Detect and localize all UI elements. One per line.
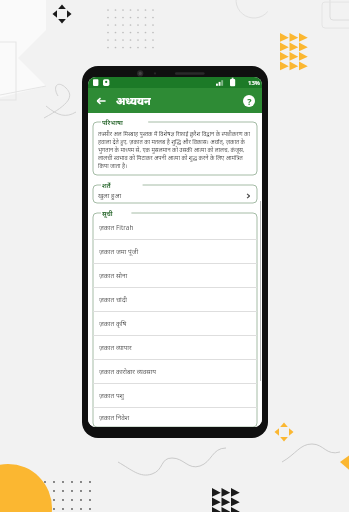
button[interactable]: ज़कात निवेश [93, 408, 257, 427]
staticText: ज़कात कारोबार व्यवसाय [99, 367, 157, 376]
staticText: परिभाषा [102, 118, 123, 126]
staticText: शर्तें [102, 181, 111, 189]
button[interactable]: ज़कात कारोबार व्यवसाय [93, 360, 257, 383]
staticText: तफ़्सीर अल मिस्बाह पुस्तक में विशेषज्ञ र… [98, 130, 252, 170]
button[interactable]: Back [91, 91, 111, 111]
button[interactable]: ज़कात चांदी [93, 288, 257, 311]
staticText: ज़कात सोना [99, 271, 128, 280]
staticText: ज़कात व्यापार [99, 343, 132, 352]
staticText: ज़कात जमा पूंजी [99, 247, 139, 256]
staticText: सूची [102, 209, 113, 217]
staticText: अध्ययन [116, 93, 151, 108]
staticText: ज़कात कृषि [99, 319, 127, 328]
button[interactable]: ज़कात Fitrah [93, 216, 257, 239]
button[interactable]: खुला हुआ [98, 191, 252, 200]
staticText: खुला हुआ [98, 191, 244, 200]
button[interactable]: ज़कात कृषि [93, 312, 257, 335]
button[interactable]: Help [239, 91, 259, 111]
staticText: 13% [248, 79, 260, 87]
staticText: ज़कात Fitrah [99, 223, 134, 232]
staticText: ज़कात निवेश [99, 413, 130, 422]
button[interactable]: ज़कात व्यापार [93, 336, 257, 359]
button[interactable]: ज़कात सोना [93, 264, 257, 287]
button[interactable]: ज़कात पशु [93, 384, 257, 407]
button[interactable]: ज़कात जमा पूंजी [93, 240, 257, 263]
staticText: ज़कात पशु [99, 391, 125, 400]
staticText: ज़कात चांदी [99, 295, 127, 304]
staticText: ? [247, 95, 252, 107]
